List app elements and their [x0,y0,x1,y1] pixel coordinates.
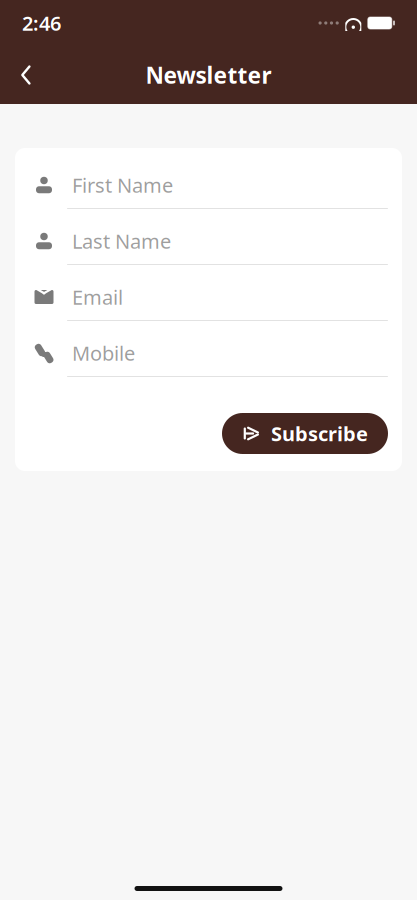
staticText: Newsletter [145,60,271,90]
staticText: First Name [72,172,173,198]
button[interactable]: Subscribe [222,413,388,454]
staticText: Last Name [72,228,171,254]
staticText: Email [72,284,123,310]
staticText: 2:46 [22,10,61,36]
staticText: Mobile [72,340,135,366]
staticText: Subscribe [271,420,368,447]
button[interactable]: Back [4,53,48,97]
